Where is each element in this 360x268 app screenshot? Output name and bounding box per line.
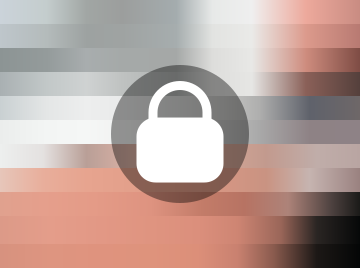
button[interactable]: Content locked: [111, 65, 249, 203]
